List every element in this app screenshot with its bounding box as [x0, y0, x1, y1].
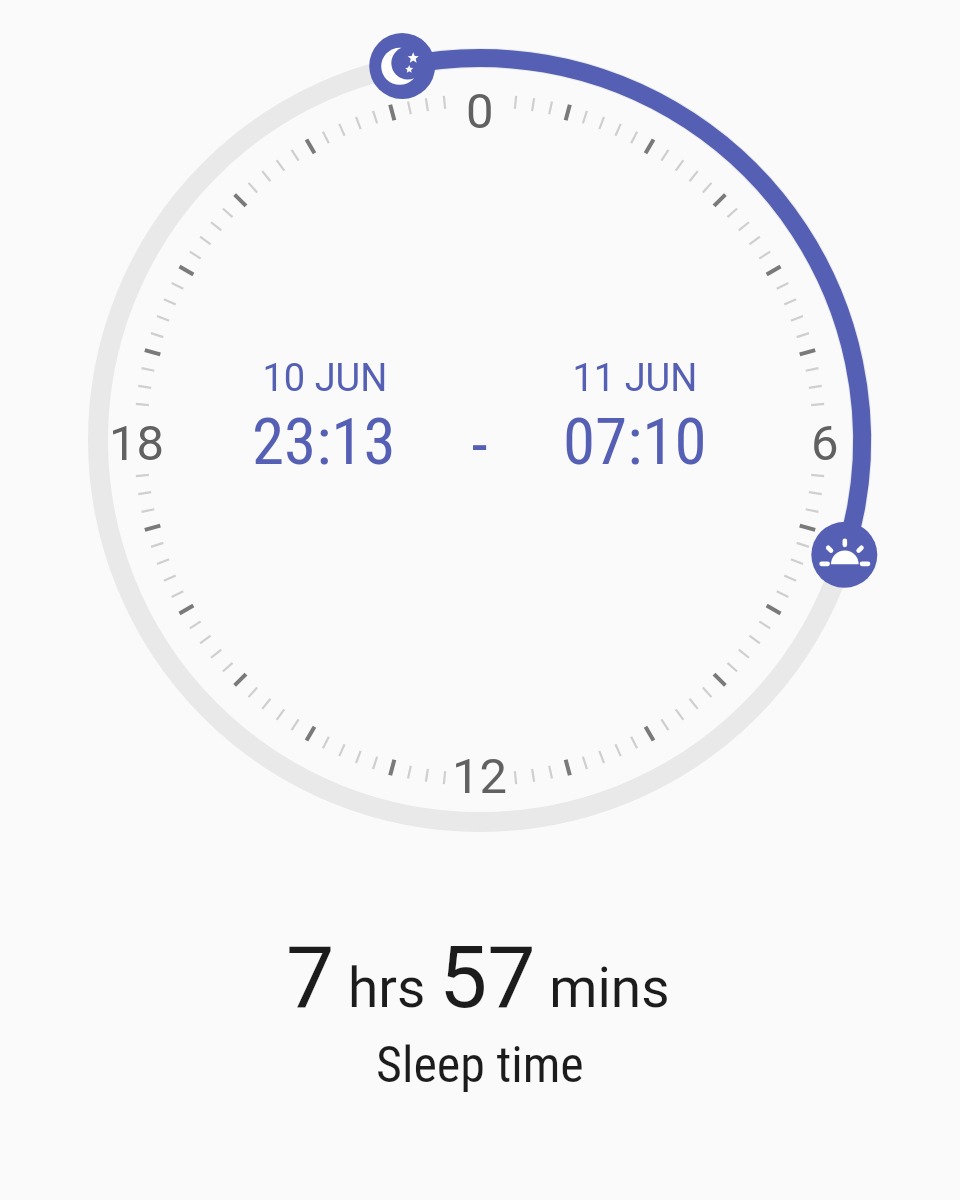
button[interactable]: [811, 522, 877, 588]
button[interactable]: [369, 32, 435, 98]
